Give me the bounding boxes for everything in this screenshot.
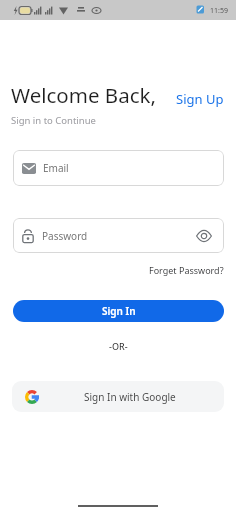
button[interactable]: Sign Up <box>176 90 224 108</box>
button[interactable]: Sign In with Google <box>12 381 224 412</box>
staticText: Sign in to Continue <box>11 114 96 127</box>
staticText: -OR- <box>109 340 128 352</box>
staticText: Welcome Back, <box>11 81 156 109</box>
staticText: Sign In with Google <box>84 390 176 404</box>
button[interactable]: Sign In <box>13 300 224 322</box>
button[interactable] <box>192 224 216 248</box>
staticText: Email <box>43 161 69 175</box>
button[interactable]: Password <box>13 218 224 253</box>
staticText: Sign In <box>102 304 136 318</box>
staticText: 11:59 <box>210 6 228 16</box>
staticText: Password <box>42 229 88 243</box>
button[interactable]: Email <box>13 150 224 186</box>
button[interactable]: Forget Password? <box>149 264 224 276</box>
